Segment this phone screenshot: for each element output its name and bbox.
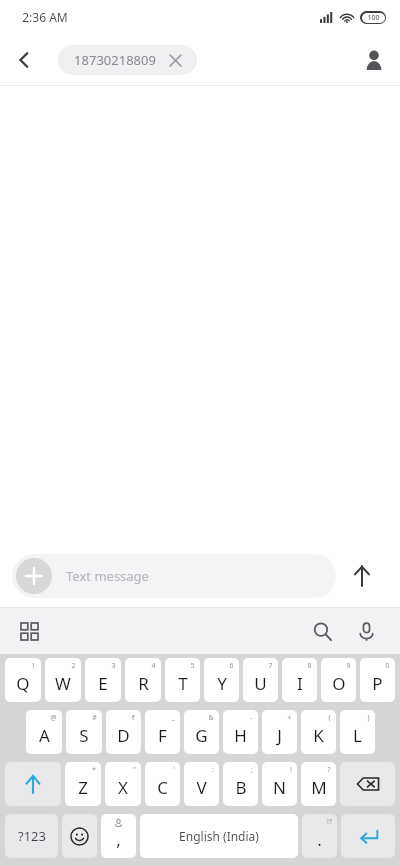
button[interactable]: * <box>65 762 101 806</box>
staticText: " <box>133 765 136 775</box>
staticText: A <box>39 724 50 747</box>
staticText: S <box>79 724 89 747</box>
staticText: B <box>235 776 247 799</box>
button[interactable]: @ <box>26 710 62 754</box>
button[interactable]: Search <box>300 609 344 653</box>
button[interactable]: Emoji <box>62 814 97 858</box>
button[interactable]: 6 <box>204 658 239 702</box>
staticText: @ <box>50 713 57 723</box>
staticText: ? <box>327 765 331 775</box>
button[interactable]: 8 <box>282 658 317 702</box>
staticText: W <box>55 672 71 695</box>
staticText: 0 <box>385 661 390 671</box>
staticText: . <box>317 828 322 851</box>
button[interactable]: ( <box>301 710 336 754</box>
staticText: 100 <box>367 13 380 23</box>
staticText: F <box>158 724 167 747</box>
staticText: ' <box>173 765 175 775</box>
button[interactable]: !? <box>302 814 337 858</box>
button[interactable]: 0 <box>360 658 395 702</box>
staticText: 18730218809 <box>74 51 156 69</box>
button[interactable]: ?123 <box>5 814 58 858</box>
button[interactable]: - <box>223 710 258 754</box>
staticText: L <box>353 724 362 747</box>
button[interactable]: Shift <box>5 762 61 806</box>
staticText: U <box>254 672 267 695</box>
staticText: ; <box>251 765 253 775</box>
staticText: 7 <box>268 661 273 671</box>
button[interactable]: Send <box>336 550 388 602</box>
button[interactable]: Back <box>0 36 48 84</box>
staticText: N <box>273 776 286 799</box>
staticText: R <box>138 672 149 695</box>
staticText: # <box>92 713 97 723</box>
staticText: !? <box>327 817 332 827</box>
staticText: G <box>195 724 208 747</box>
button[interactable]: ) <box>340 710 375 754</box>
button[interactable]: 9 <box>321 658 356 702</box>
staticText: C <box>157 776 168 799</box>
staticText: : <box>212 765 214 775</box>
staticText: Q <box>16 672 30 695</box>
staticText: M <box>311 776 327 799</box>
button[interactable]: Add attachment <box>16 558 52 594</box>
staticText: E <box>98 672 108 695</box>
button[interactable]: ? <box>301 762 336 806</box>
staticText: English (India) <box>179 828 259 844</box>
button[interactable]: , <box>101 814 136 858</box>
staticText: ?123 <box>18 827 46 845</box>
staticText: _ <box>171 713 175 723</box>
staticText: 1 <box>31 661 36 671</box>
button[interactable]: 7 <box>243 658 278 702</box>
staticText: K <box>313 724 324 747</box>
button[interactable]: Voice input <box>344 609 388 653</box>
staticText: * <box>92 765 96 775</box>
button[interactable]: 1 <box>5 658 41 702</box>
staticText: X <box>118 776 128 799</box>
staticText: Y <box>217 672 227 695</box>
button[interactable]: : <box>184 762 219 806</box>
button[interactable]: _ <box>145 710 180 754</box>
staticText: 2:36 AM <box>22 9 68 25</box>
staticText: + <box>287 713 292 723</box>
button[interactable]: 3 <box>85 658 121 702</box>
staticText: D <box>117 724 130 747</box>
button[interactable]: + <box>262 710 297 754</box>
staticText: J <box>277 724 282 747</box>
button[interactable]: 18730218809 <box>58 45 197 75</box>
button[interactable]: Keyboard layouts <box>10 612 48 650</box>
button[interactable]: # <box>66 710 102 754</box>
button[interactable]: Add attachment <box>12 554 336 598</box>
button[interactable]: 5 <box>165 658 200 702</box>
staticText: Z <box>78 776 88 799</box>
staticText: ( <box>328 713 331 723</box>
staticText: 9 <box>346 661 351 671</box>
staticText: O <box>332 672 346 695</box>
button[interactable]: ₹ <box>106 710 141 754</box>
staticText: P <box>372 672 383 695</box>
staticText: 4 <box>151 661 156 671</box>
button[interactable]: Enter <box>341 814 395 858</box>
staticText: - <box>250 713 253 723</box>
button[interactable]: English (India) <box>140 814 298 858</box>
staticText: ) <box>367 713 370 723</box>
staticText: ₹ <box>131 713 136 723</box>
staticText: 3 <box>111 661 116 671</box>
staticText: 6 <box>229 661 234 671</box>
staticText: ! <box>290 765 292 775</box>
button[interactable]: ; <box>223 762 258 806</box>
button[interactable]: " <box>105 762 141 806</box>
button[interactable]: & <box>184 710 219 754</box>
button[interactable]: ' <box>145 762 180 806</box>
button[interactable]: 2 <box>45 658 81 702</box>
button[interactable]: ! <box>262 762 297 806</box>
staticText: H <box>234 724 247 747</box>
button[interactable]: Backspace <box>340 762 395 806</box>
staticText: Text message <box>66 567 149 585</box>
staticText: , <box>116 828 121 851</box>
button[interactable]: 4 <box>125 658 161 702</box>
button[interactable]: Contact <box>348 34 400 85</box>
staticText: 8 <box>307 661 312 671</box>
staticText: T <box>178 672 188 695</box>
staticText: 2 <box>71 661 76 671</box>
